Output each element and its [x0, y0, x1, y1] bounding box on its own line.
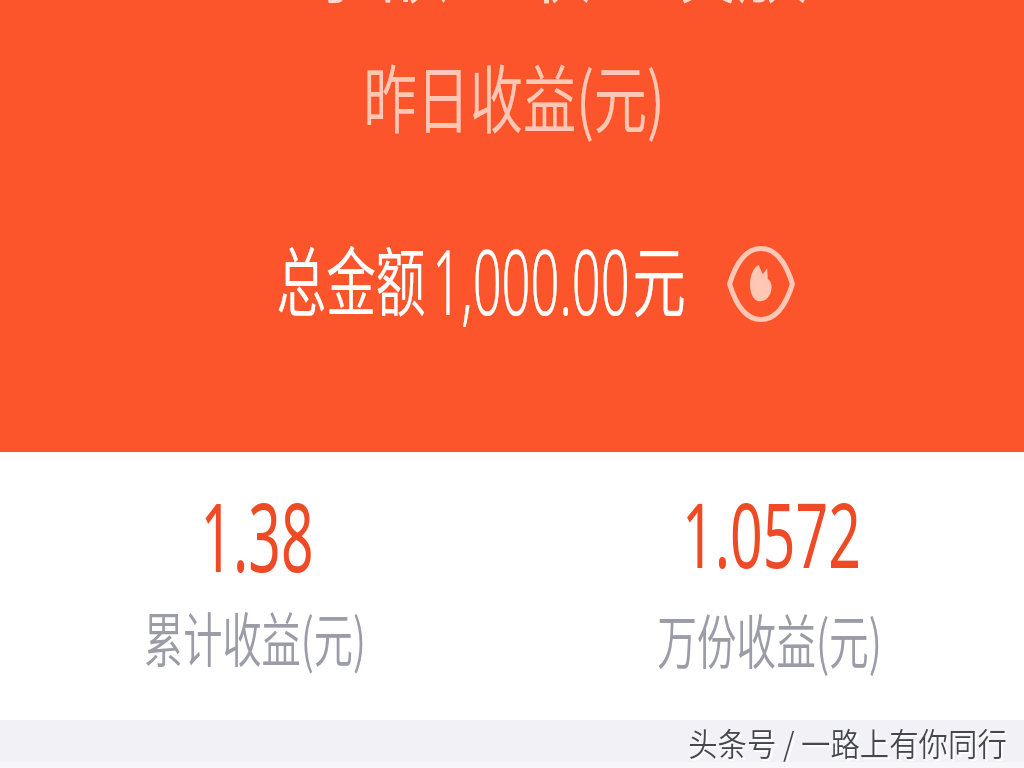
staticText: 万份收益(元)	[657, 595, 882, 680]
staticText: 头条号 / 一路上有你同行	[688, 719, 1007, 766]
staticText: 1.0572	[682, 471, 861, 595]
button[interactable]	[258, 236, 690, 328]
staticText: 元	[632, 219, 686, 333]
button[interactable]: Toggle balance visibility	[717, 238, 805, 330]
staticText: 昨日收益(元)	[363, 41, 665, 148]
staticText: 1,000.00	[432, 219, 630, 342]
staticText: 累计收益(元)	[144, 595, 366, 680]
staticText: 头条号 / 一路上有你同行	[690, 721, 1009, 768]
staticText: 1.38	[200, 470, 314, 600]
button[interactable]	[512, 452, 1024, 718]
staticText: 总金额	[276, 222, 426, 332]
staticText: 余额宝收益发放	[304, 0, 809, 23]
button[interactable]	[0, 452, 512, 718]
